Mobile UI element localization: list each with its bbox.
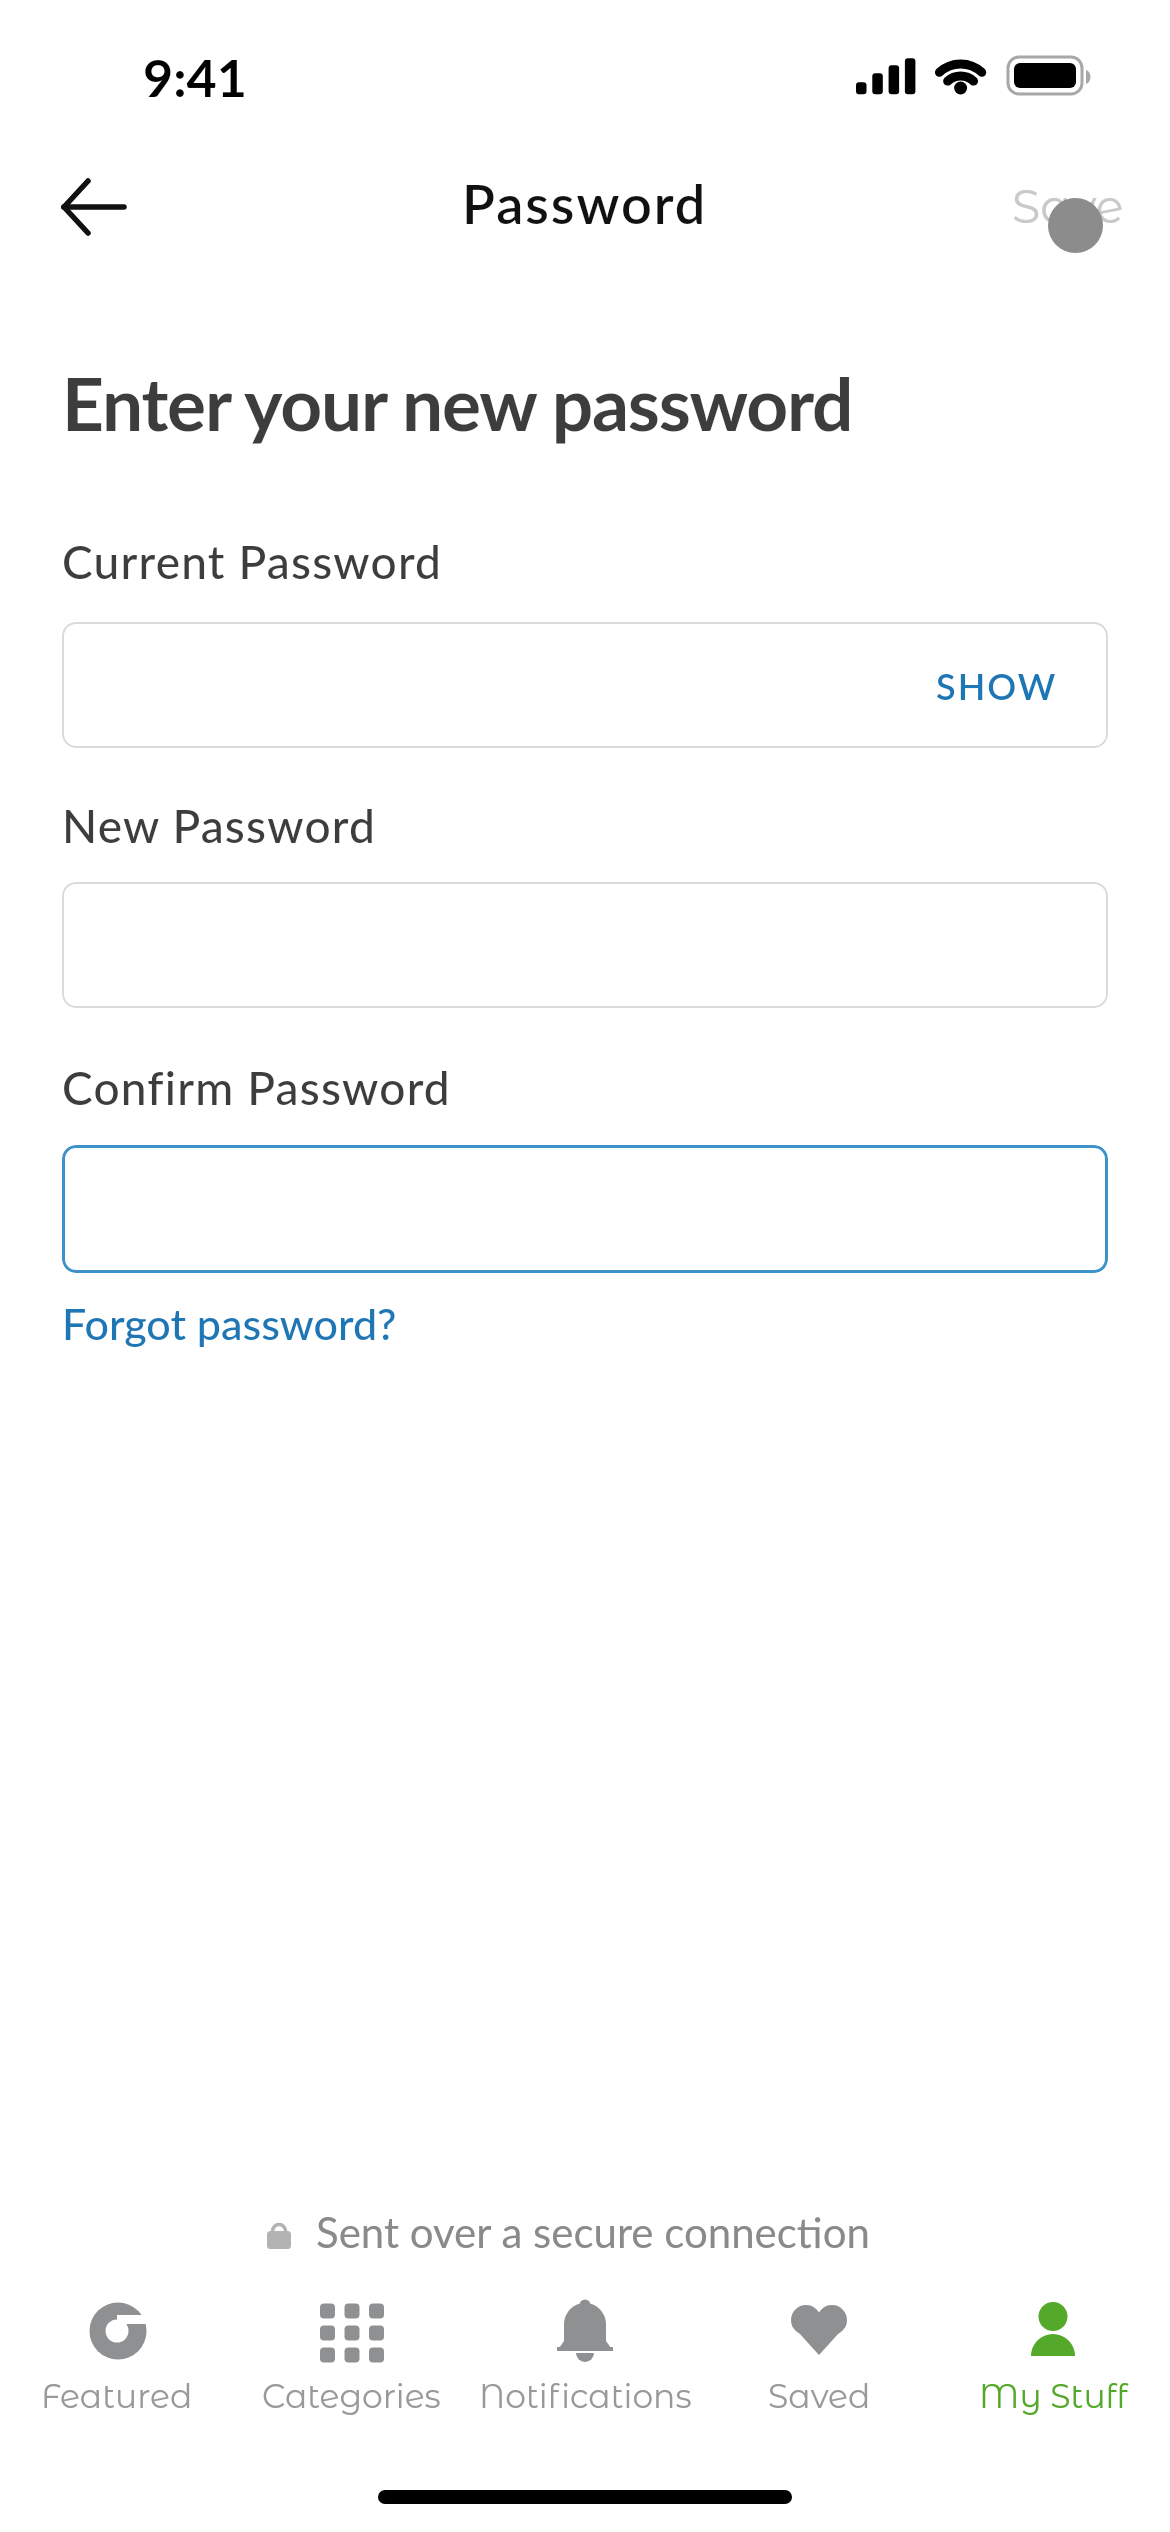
button[interactable]: My Stuff <box>936 2280 1170 2416</box>
staticText: New Password <box>62 798 377 853</box>
staticText: 9:41 <box>143 46 247 108</box>
button[interactable]: Save <box>990 170 1140 265</box>
button[interactable]: Saved <box>702 2280 936 2416</box>
staticText: Featured <box>41 2376 193 2416</box>
staticText: Enter your new password <box>62 359 853 447</box>
button[interactable]: Featured <box>0 2280 234 2416</box>
button[interactable] <box>62 882 1108 1008</box>
button[interactable]: SHOW <box>936 664 1058 707</box>
button[interactable] <box>62 1145 1108 1273</box>
staticText: SHOW <box>936 664 1058 707</box>
staticText: Notifications <box>479 2376 692 2416</box>
button[interactable]: SHOW <box>62 622 1108 748</box>
staticText: My Stuff <box>979 2376 1128 2416</box>
staticText: Password <box>462 171 708 236</box>
staticText: Sent over a secure connection <box>316 2207 870 2257</box>
button[interactable]: Notifications <box>468 2280 702 2416</box>
staticText: Save <box>1012 178 1124 234</box>
staticText: Current Password <box>62 534 443 589</box>
staticText: Categories <box>262 2376 441 2416</box>
button[interactable]: Categories <box>234 2280 468 2416</box>
button[interactable]: Forgot password? <box>62 1298 397 1350</box>
staticText: Saved <box>768 2376 871 2416</box>
button[interactable] <box>30 160 150 255</box>
staticText: Forgot password? <box>62 1298 397 1350</box>
staticText: Confirm Password <box>62 1060 451 1115</box>
